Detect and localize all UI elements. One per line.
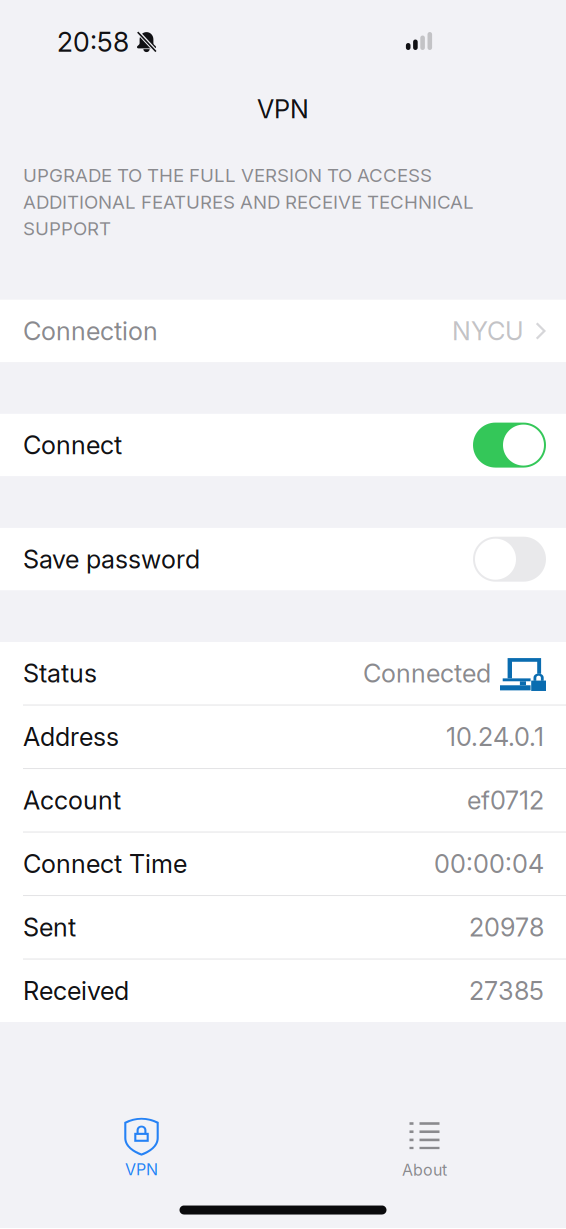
- staticText: 20:58: [57, 26, 129, 58]
- button[interactable]: VPN: [0, 1092, 283, 1178]
- staticText: Connection: [23, 316, 158, 346]
- button[interactable]: Address: [0, 705, 566, 768]
- button[interactable]: Account: [0, 769, 566, 831]
- staticText: Received: [23, 975, 129, 1006]
- staticText: ef0712: [467, 785, 544, 816]
- staticText: VPN: [125, 1160, 158, 1179]
- staticText: NYCU: [452, 316, 524, 346]
- staticText: UPGRADE TO THE FULL VERSION TO ACCESS AD…: [23, 164, 474, 240]
- staticText: 20978: [469, 912, 544, 943]
- staticText: Status: [23, 658, 97, 689]
- staticText: Connect: [23, 430, 122, 460]
- button[interactable]: Connection: [0, 300, 566, 362]
- button[interactable]: Connect Time: [0, 832, 566, 895]
- button[interactable]: Received: [0, 959, 566, 1022]
- staticText: About: [402, 1160, 447, 1180]
- button[interactable]: About: [283, 1092, 566, 1178]
- button[interactable]: Sent: [0, 896, 566, 958]
- button[interactable]: Connect: [0, 414, 566, 476]
- staticText: 00:00:04: [434, 848, 544, 879]
- button[interactable]: Save password: [0, 528, 566, 590]
- staticText: 27385: [469, 975, 544, 1006]
- staticText: 10.24.0.1: [446, 721, 544, 752]
- staticText: Sent: [23, 912, 76, 943]
- button[interactable]: Status: [0, 642, 566, 704]
- staticText: Address: [23, 721, 119, 752]
- staticText: VPN: [257, 94, 309, 124]
- staticText: Account: [23, 785, 121, 816]
- staticText: Connect Time: [23, 848, 187, 879]
- staticText: Save password: [23, 544, 200, 575]
- staticText: Connected: [363, 658, 491, 689]
